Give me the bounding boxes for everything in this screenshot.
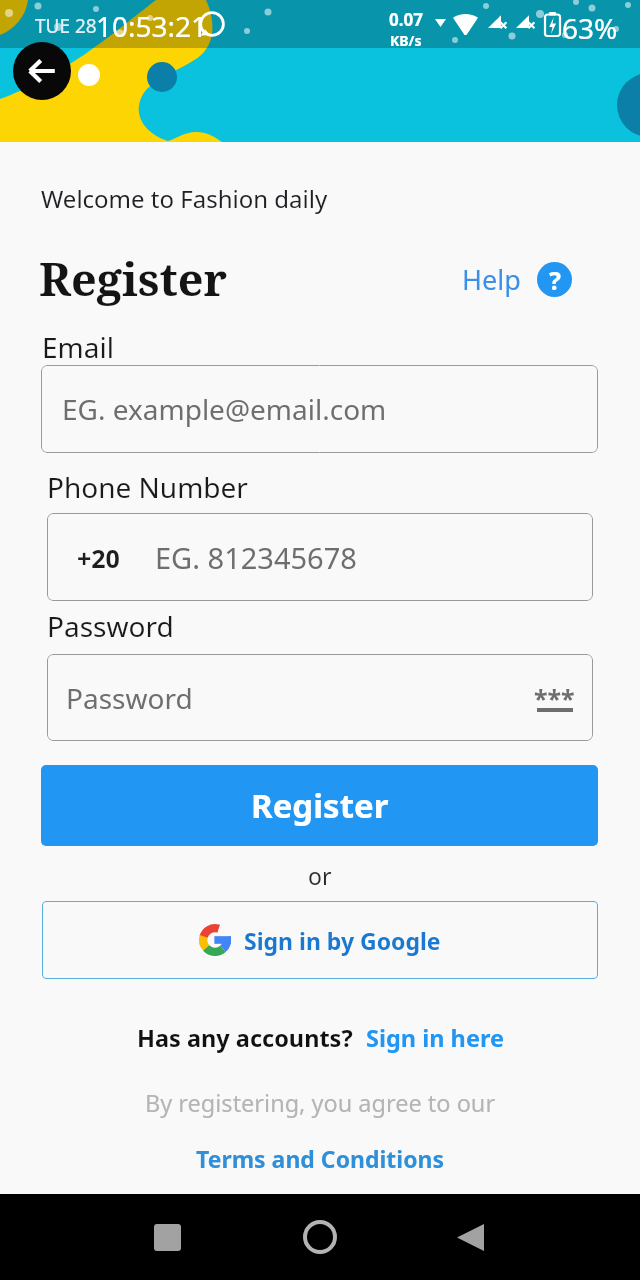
staticText: TUE 28 (35, 13, 97, 39)
staticText: Phone Number (47, 468, 248, 506)
staticText: Password (47, 607, 174, 645)
staticText: Email (42, 328, 114, 366)
staticText: Register (39, 248, 227, 309)
staticText: Sign in by Google (244, 925, 441, 956)
staticText: 0.07 (389, 8, 423, 31)
staticText: EG. 812345678 (155, 538, 357, 577)
staticText: Password (66, 679, 193, 717)
staticText: By registering, you agree to our (145, 1087, 496, 1119)
button[interactable]: Help (462, 261, 572, 298)
button[interactable]: Sign in here (366, 1022, 504, 1054)
staticText: +20 (77, 541, 120, 575)
button[interactable]: Register (41, 765, 598, 846)
button[interactable]: Back (13, 42, 71, 100)
staticText: Terms and Conditions (196, 1143, 445, 1174)
staticText: Register (251, 783, 389, 828)
staticText: Sign in here (366, 1022, 504, 1054)
button[interactable]: Terms and Conditions (0, 1143, 640, 1174)
staticText: ? (549, 263, 561, 297)
staticText: Has any accounts? (137, 1022, 353, 1054)
staticText: Welcome to Fashion daily (41, 182, 328, 215)
staticText: EG. example@email.com (62, 390, 387, 428)
staticText: or (308, 860, 332, 891)
staticText: *** (534, 681, 575, 715)
button[interactable]: Sign in by Google (42, 901, 598, 979)
staticText: Help (462, 261, 521, 298)
staticText: 10:53:21 (96, 7, 208, 45)
staticText: KB/s (390, 31, 422, 50)
button[interactable]: Back (457, 1224, 484, 1251)
staticText: 63% (562, 9, 618, 47)
button[interactable]: Recents (154, 1224, 181, 1251)
button[interactable]: EG. example@email.com (41, 365, 598, 453)
button[interactable]: Home (303, 1220, 337, 1254)
button[interactable]: Password (47, 654, 593, 741)
button[interactable]: +20 (47, 513, 593, 601)
